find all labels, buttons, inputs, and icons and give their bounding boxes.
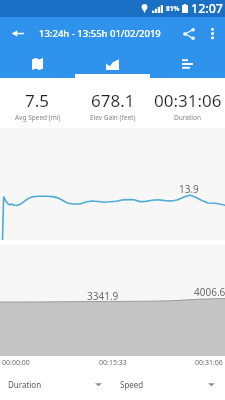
staticText: Duration — [174, 113, 201, 122]
button[interactable]: Map tab — [0, 50, 75, 78]
staticText: 13:24h - 13:55h — [39, 27, 108, 40]
staticText: 00:00:00 — [2, 358, 30, 368]
staticText: 00:31:06 — [154, 89, 222, 112]
button[interactable]: 678.1 — [75, 78, 150, 128]
button[interactable]: Share — [178, 17, 200, 50]
button[interactable]: More options — [200, 17, 225, 50]
staticText: Duration — [8, 379, 42, 390]
staticText: 678.1 — [91, 89, 135, 112]
button[interactable]: 00:31:06 — [150, 78, 225, 128]
button[interactable]: Splits tab — [150, 50, 225, 78]
button[interactable]: Duration — [0, 369, 112, 400]
staticText: 00:15:33 — [99, 358, 127, 368]
staticText: Speed — [120, 379, 144, 390]
button[interactable]: Graph tab — [75, 50, 150, 78]
staticText: 01/02/2019 — [110, 27, 161, 40]
button[interactable]: Navigate up — [0, 17, 36, 50]
staticText: 00:31:06 — [195, 358, 223, 368]
staticText: 4006.6 — [194, 285, 225, 299]
staticText: 3341.9 — [87, 289, 119, 303]
button[interactable]: 7.5 — [0, 78, 75, 128]
staticText: 81% — [166, 4, 180, 13]
staticText: 12:07 — [191, 0, 224, 17]
button[interactable]: Speed — [112, 369, 225, 400]
staticText: 13.9 — [179, 182, 199, 196]
staticText: Avg Speed (mi) — [15, 113, 61, 122]
staticText: 7.5 — [25, 89, 50, 112]
staticText: Elev Gain (feet) — [90, 113, 136, 122]
